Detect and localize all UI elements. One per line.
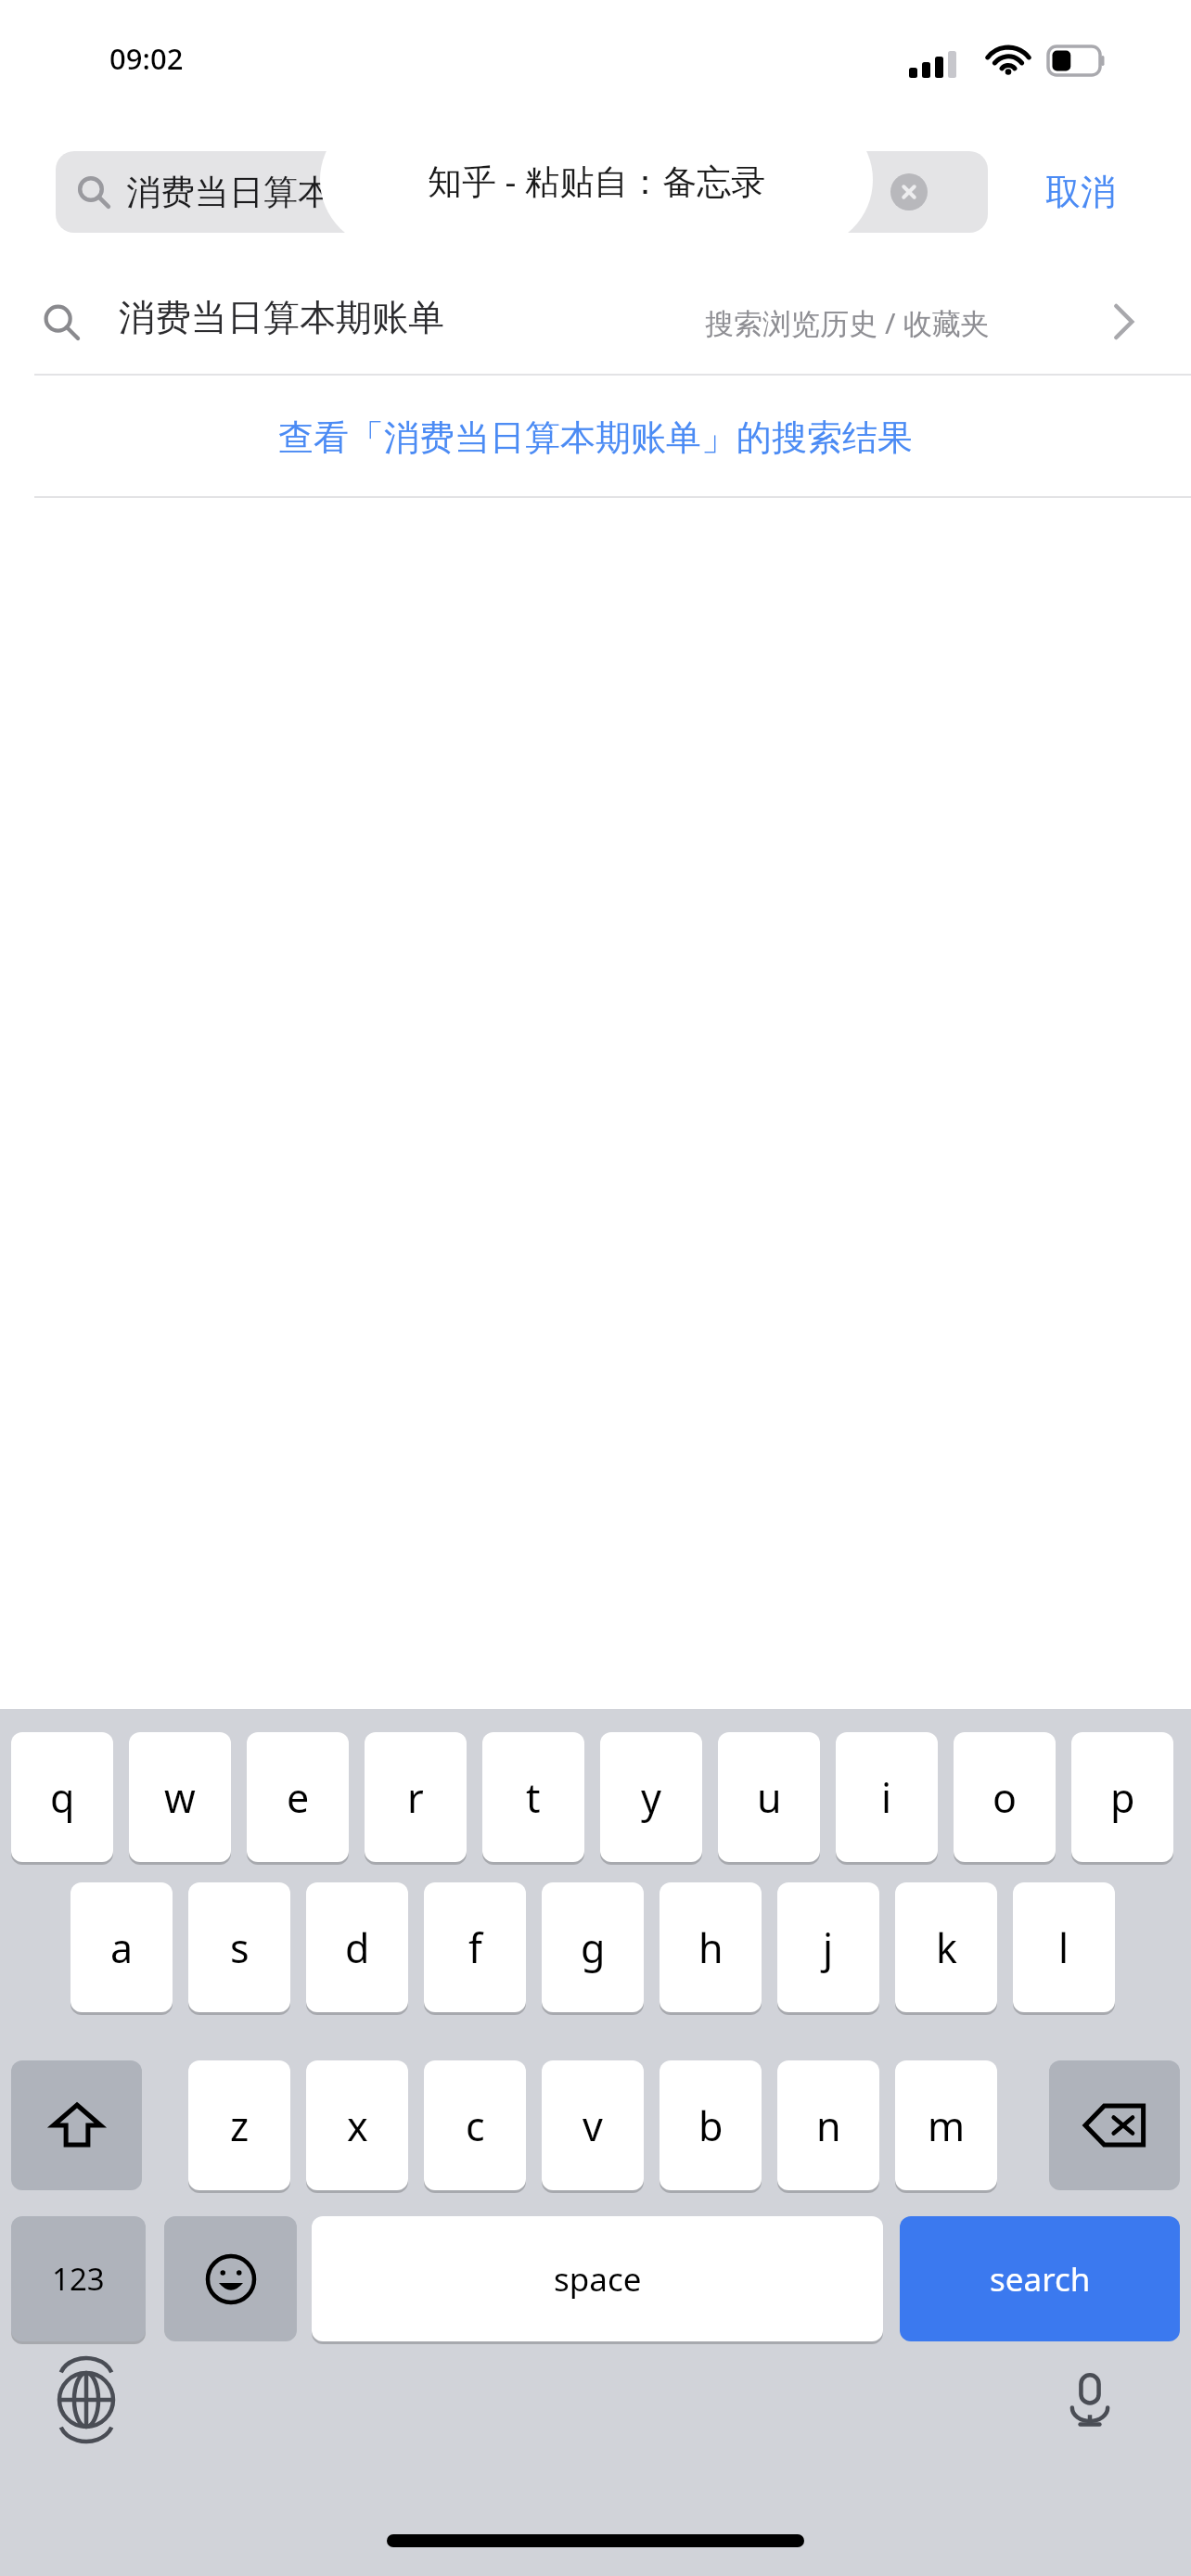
staticText: search xyxy=(990,2257,1091,2302)
button[interactable]: a xyxy=(70,1882,173,2012)
button[interactable]: Change keyboard xyxy=(45,2358,128,2442)
button[interactable]: v xyxy=(542,2060,644,2190)
staticText: space xyxy=(554,2257,642,2302)
staticText: c xyxy=(466,2098,485,2153)
button[interactable]: w xyxy=(129,1732,231,1862)
button[interactable]: d xyxy=(306,1882,408,2012)
staticText: u xyxy=(757,1770,782,1825)
staticText: i xyxy=(881,1770,892,1825)
button[interactable]: x xyxy=(306,2060,408,2190)
staticText: 搜索浏览历史 / 收藏夹 xyxy=(705,303,990,342)
button[interactable]: k xyxy=(895,1882,997,2012)
staticText: 查看「消费当日算本期账单」的搜索结果 xyxy=(0,415,1191,460)
button[interactable]: l xyxy=(1013,1882,1115,2012)
staticText: 知乎 - 粘贴自：备忘录 xyxy=(428,157,766,204)
button[interactable]: g xyxy=(542,1882,644,2012)
button[interactable]: space xyxy=(312,2216,883,2341)
button[interactable]: o xyxy=(954,1732,1056,1862)
staticText: b xyxy=(698,2098,724,2153)
staticText: y xyxy=(641,1770,661,1825)
button[interactable]: h xyxy=(660,1882,762,2012)
staticText: h xyxy=(698,1920,724,1975)
button[interactable]: m xyxy=(895,2060,997,2190)
button[interactable]: search xyxy=(900,2216,1180,2341)
button[interactable]: 查看「消费当日算本期账单」的搜索结果 xyxy=(0,376,1191,498)
button[interactable]: s xyxy=(188,1882,290,2012)
button[interactable]: 123 xyxy=(11,2216,146,2341)
staticText: o xyxy=(992,1770,1018,1825)
staticText: w xyxy=(164,1770,196,1825)
staticText: g xyxy=(581,1920,606,1975)
staticText: x xyxy=(347,2098,368,2153)
staticText: 取消 xyxy=(1045,170,1116,214)
button[interactable]: Shift xyxy=(11,2060,142,2190)
staticText: q xyxy=(50,1770,75,1825)
staticText: z xyxy=(230,2098,250,2153)
button[interactable]: n xyxy=(777,2060,879,2190)
button[interactable]: q xyxy=(11,1732,113,1862)
button[interactable]: 取消 xyxy=(1011,151,1150,233)
staticText: j xyxy=(823,1920,834,1975)
button[interactable]: y xyxy=(600,1732,702,1862)
button[interactable]: 知乎 - 粘贴自：备忘录 xyxy=(320,111,873,249)
staticText: n xyxy=(816,2098,841,2153)
staticText: m xyxy=(928,2098,966,2153)
staticText: p xyxy=(1110,1770,1135,1825)
staticText: 消费当日算本期账单 xyxy=(119,295,444,340)
button[interactable]: r xyxy=(365,1732,467,1862)
button[interactable]: Clear text xyxy=(890,173,928,210)
button[interactable]: p xyxy=(1071,1732,1173,1862)
button[interactable]: f xyxy=(424,1882,526,2012)
button[interactable]: z xyxy=(188,2060,290,2190)
staticText: 123 xyxy=(52,2258,105,2300)
button[interactable]: e xyxy=(247,1732,349,1862)
button[interactable]: 消费当日算本期账单 xyxy=(0,265,1191,376)
button[interactable]: c xyxy=(424,2060,526,2190)
staticText: r xyxy=(407,1770,424,1825)
staticText: d xyxy=(345,1920,370,1975)
staticText: k xyxy=(936,1920,957,1975)
button[interactable]: b xyxy=(660,2060,762,2190)
staticText: s xyxy=(230,1920,250,1975)
button[interactable]: i xyxy=(836,1732,938,1862)
button[interactable]: Dictation xyxy=(1048,2358,1132,2442)
button[interactable]: u xyxy=(718,1732,820,1862)
button[interactable]: t xyxy=(482,1732,584,1862)
button[interactable]: Emoji keyboard xyxy=(164,2216,297,2341)
button[interactable]: 消费当日算本期账单 xyxy=(56,151,988,233)
staticText: v xyxy=(583,2098,603,2153)
button[interactable]: j xyxy=(777,1882,879,2012)
button[interactable]: Backspace xyxy=(1049,2060,1180,2190)
staticText: f xyxy=(468,1920,482,1975)
staticText: 消费当日算本期账单 xyxy=(126,171,435,214)
staticText: t xyxy=(526,1770,541,1825)
staticText: a xyxy=(110,1920,134,1975)
staticText: 09:02 xyxy=(109,39,184,78)
staticText: e xyxy=(287,1770,310,1825)
staticText: l xyxy=(1058,1920,1069,1975)
